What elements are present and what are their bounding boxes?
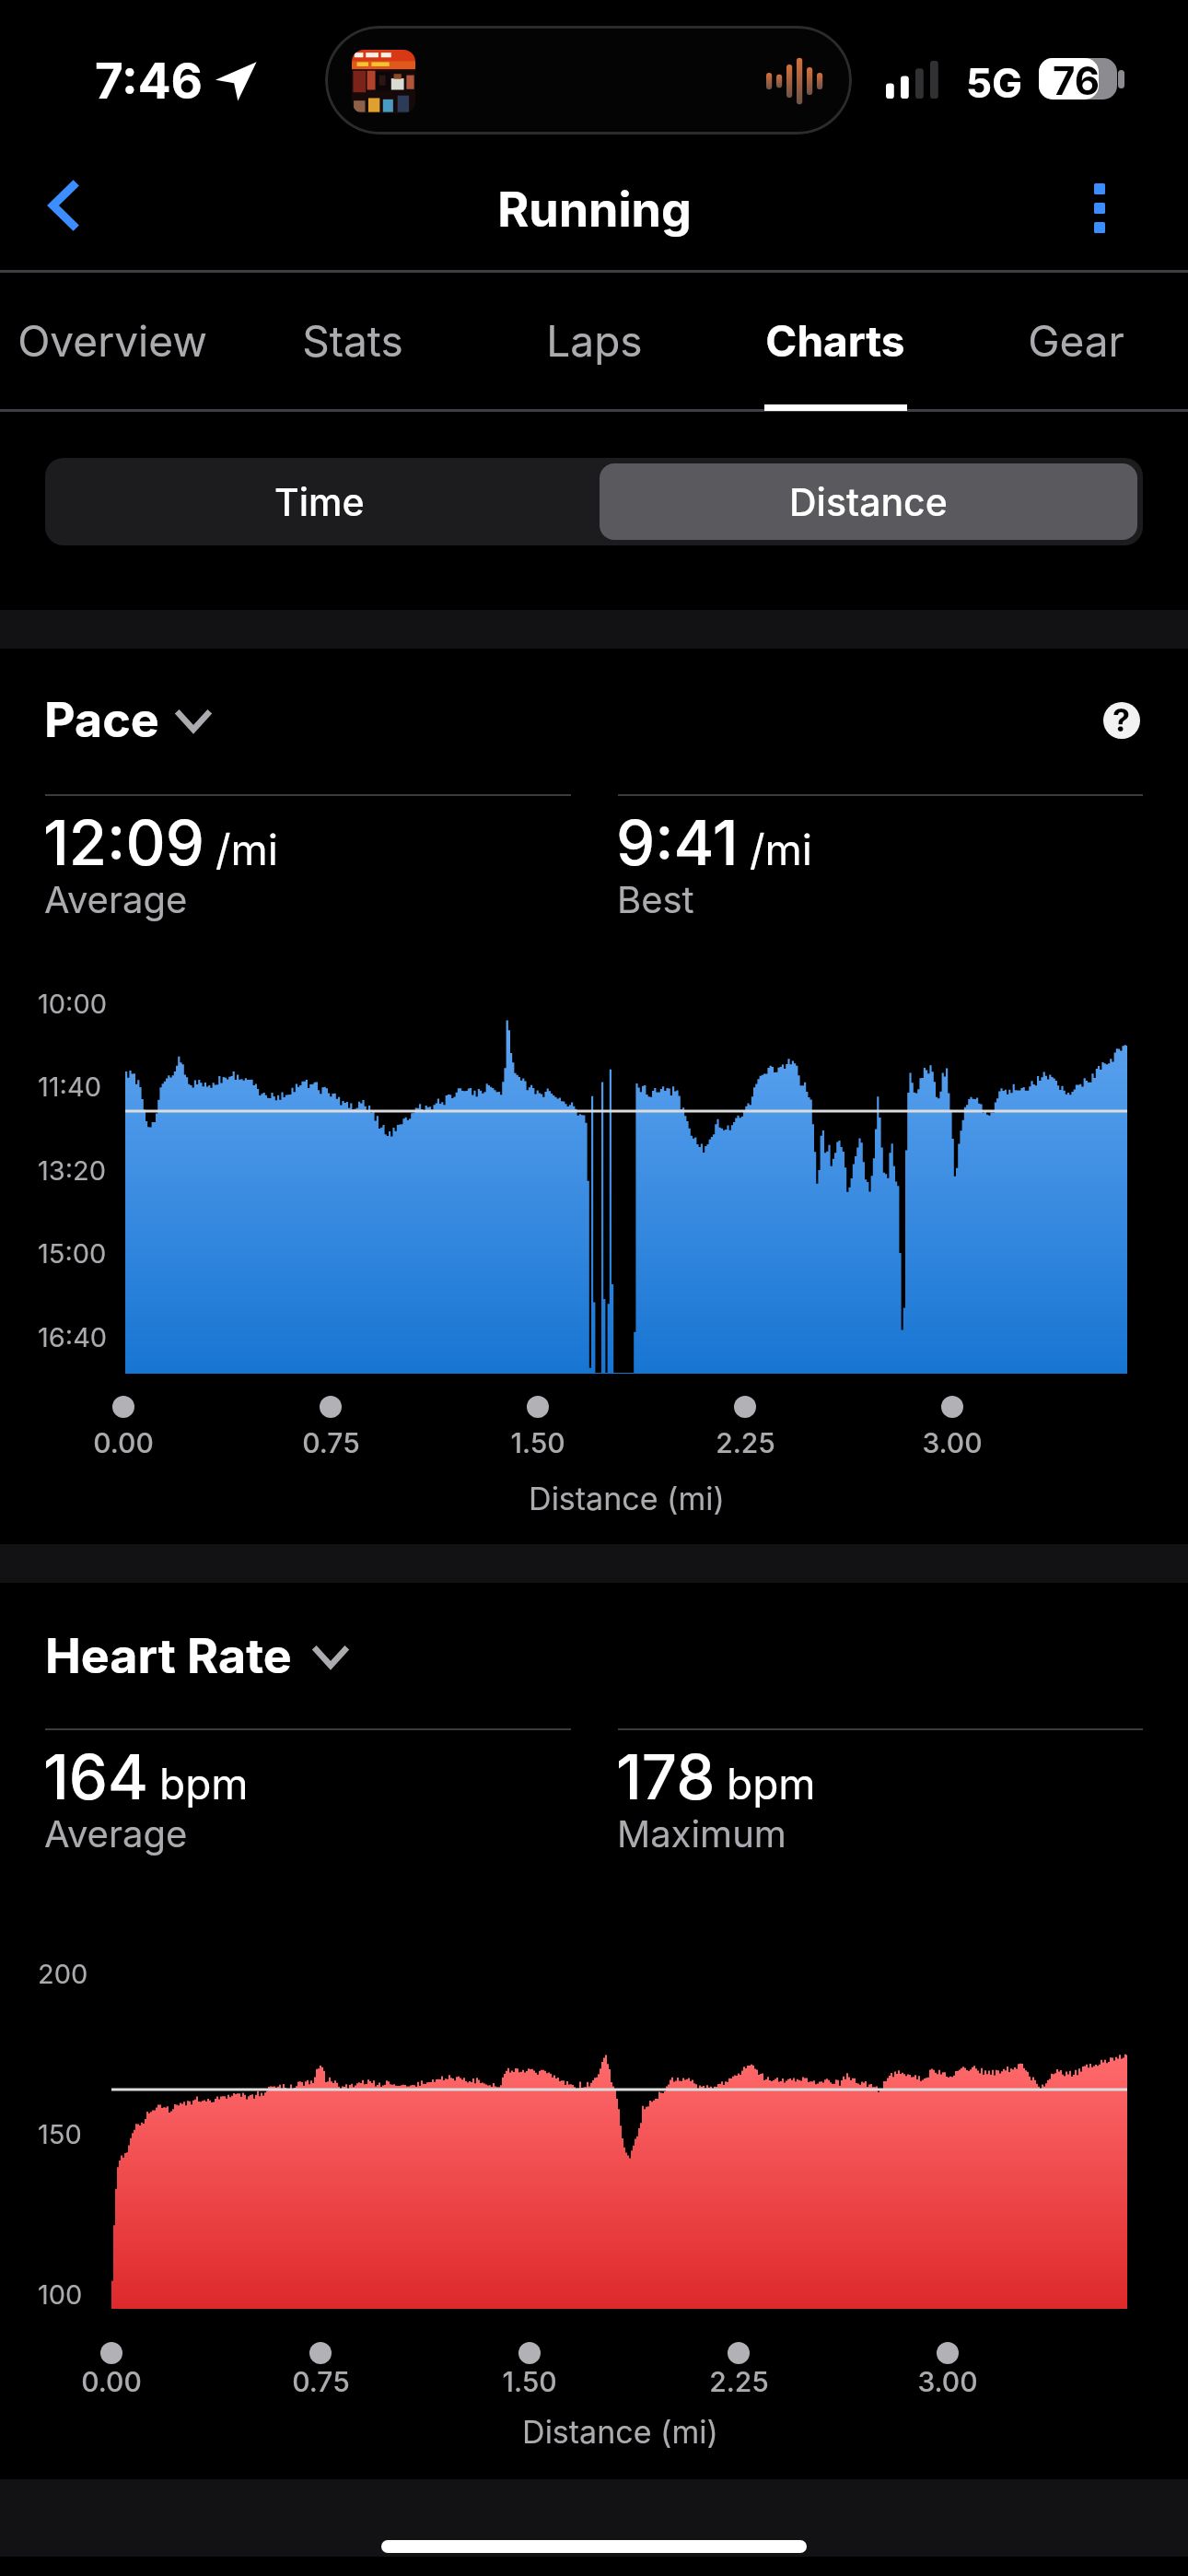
staticText: Gear bbox=[1028, 315, 1124, 367]
staticText: Distance (mi) bbox=[529, 1480, 725, 1517]
button[interactable]: Back bbox=[18, 166, 98, 245]
staticText: bpm bbox=[727, 1758, 816, 1809]
staticText: Heart Rate bbox=[45, 1627, 292, 1685]
staticText: 13:20 bbox=[38, 1154, 107, 1187]
button[interactable]: More options bbox=[1060, 166, 1139, 245]
staticText: Best bbox=[617, 877, 694, 921]
staticText: Distance (mi) bbox=[522, 2413, 718, 2451]
button[interactable]: Pace bbox=[33, 680, 224, 755]
staticText: 164 bbox=[43, 1739, 148, 1814]
staticText: Average bbox=[44, 877, 188, 921]
staticText: 100 bbox=[38, 2278, 83, 2311]
staticText: 11:40 bbox=[38, 1071, 101, 1103]
staticText: 0.00 bbox=[81, 2365, 142, 2398]
button[interactable]: Overview bbox=[0, 272, 232, 411]
button[interactable]: Charts bbox=[716, 272, 955, 411]
staticText: 10:00 bbox=[38, 988, 108, 1020]
staticText: 16:40 bbox=[38, 1321, 108, 1353]
staticText: 1.50 bbox=[502, 2365, 557, 2398]
staticText: Maximum bbox=[617, 1811, 786, 1856]
button[interactable]: Distance bbox=[600, 463, 1137, 540]
staticText: 3.00 bbox=[917, 2365, 978, 2398]
staticText: Average bbox=[44, 1811, 188, 1856]
button[interactable]: Stats bbox=[233, 272, 472, 411]
staticText: Overview bbox=[17, 315, 207, 367]
staticText: 15:00 bbox=[38, 1237, 107, 1270]
staticText: 0.00 bbox=[93, 1426, 154, 1459]
staticText: Distance bbox=[789, 479, 948, 525]
staticText: 12:09 bbox=[43, 805, 204, 880]
staticText: 0.75 bbox=[292, 2365, 350, 2398]
button[interactable]: Heart Rate bbox=[34, 1616, 361, 1692]
staticText: /mi bbox=[750, 824, 813, 875]
button[interactable]: Help bbox=[1103, 702, 1140, 739]
button[interactable]: Gear bbox=[956, 272, 1188, 411]
staticText: Time bbox=[274, 479, 365, 525]
staticText: 2.25 bbox=[716, 1426, 775, 1459]
staticText: ? bbox=[1112, 702, 1131, 738]
staticText: Running bbox=[497, 181, 692, 239]
staticText: Laps bbox=[546, 315, 643, 367]
staticText: 5G bbox=[966, 58, 1023, 107]
staticText: 9:41 bbox=[616, 805, 739, 880]
staticText: 200 bbox=[38, 1958, 88, 1990]
staticText: bpm bbox=[159, 1758, 249, 1809]
staticText: Charts bbox=[765, 315, 905, 367]
staticText: 3.00 bbox=[922, 1426, 983, 1459]
staticText: Pace bbox=[44, 691, 159, 749]
staticText: 178 bbox=[616, 1739, 716, 1814]
staticText: 7:46 bbox=[95, 52, 203, 111]
staticText: /mi bbox=[215, 824, 279, 875]
staticText: 2.25 bbox=[709, 2365, 769, 2398]
button[interactable]: Time bbox=[45, 458, 594, 545]
staticText: 76 bbox=[1053, 57, 1101, 99]
staticText: 150 bbox=[38, 2118, 82, 2150]
staticText: 0.75 bbox=[302, 1426, 360, 1459]
staticText: 1.50 bbox=[510, 1426, 565, 1459]
button[interactable]: Laps bbox=[474, 272, 714, 411]
staticText: Stats bbox=[302, 315, 403, 367]
